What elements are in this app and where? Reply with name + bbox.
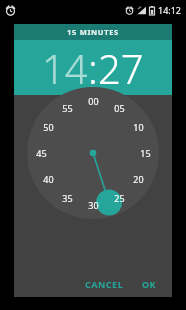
- staticText: 15 MINUTES: [67, 27, 119, 37]
- staticText: :: [88, 41, 98, 95]
- staticText: 20: [133, 173, 144, 185]
- staticText: 45: [36, 147, 47, 159]
- staticText: 10: [133, 121, 144, 133]
- staticText: 14:12: [158, 4, 182, 16]
- staticText: 50: [43, 121, 54, 133]
- staticText: 15: [140, 147, 151, 159]
- staticText: 55: [62, 102, 73, 114]
- staticText: OK: [142, 278, 157, 290]
- other: Alarm set: [5, 5, 16, 16]
- button[interactable]: 27: [98, 41, 144, 95]
- staticText: 00: [88, 95, 99, 107]
- staticText: 25: [114, 192, 125, 204]
- staticText: 05: [114, 102, 125, 114]
- staticText: 30: [88, 199, 99, 211]
- staticText: 27: [98, 41, 144, 95]
- staticText: 35: [62, 192, 73, 204]
- staticText: 40: [43, 173, 54, 185]
- button[interactable]: CANCEL: [80, 275, 129, 293]
- staticText: 14: [42, 41, 88, 95]
- button[interactable]: 14: [42, 41, 88, 95]
- button[interactable]: OK: [137, 275, 162, 293]
- button[interactable]: 00: [14, 95, 172, 271]
- staticText: CANCEL: [85, 278, 124, 290]
